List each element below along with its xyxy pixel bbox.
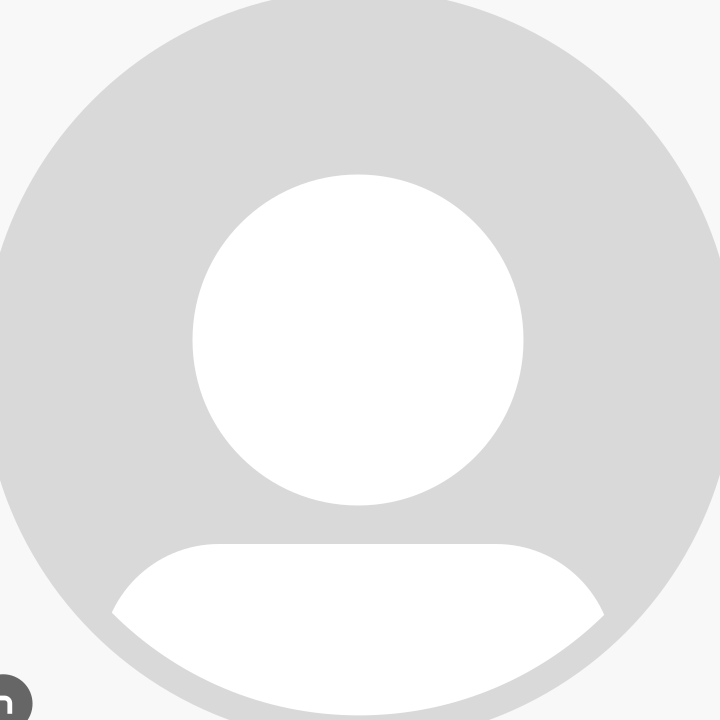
- button[interactable]: Change profile photo: [0, 0, 720, 720]
